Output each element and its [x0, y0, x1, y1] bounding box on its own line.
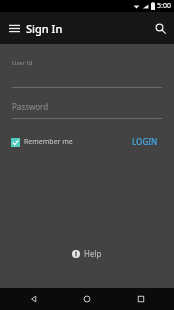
button[interactable]: Recent apps [121, 288, 161, 310]
staticText: User Id [12, 59, 33, 67]
staticText: LOGIN [132, 136, 158, 147]
other: Remember me checkbox, checked [11, 138, 20, 147]
staticText: Remember me [24, 137, 73, 147]
button[interactable]: Remember me checkbox, checked [10, 133, 74, 151]
staticText: 5:00 [157, 1, 171, 11]
button[interactable]: Search [150, 18, 170, 38]
button[interactable]: Password [12, 101, 162, 119]
staticText: Sign In [26, 21, 63, 36]
staticText: Help [84, 248, 102, 259]
button[interactable]: Help [62, 243, 112, 264]
button[interactable]: Home [67, 288, 107, 310]
button[interactable]: Back [14, 288, 54, 310]
button[interactable]: LOGIN [126, 131, 164, 152]
button[interactable]: Open navigation menu [4, 18, 24, 38]
button[interactable]: User Id [12, 59, 162, 88]
staticText: Password [12, 101, 49, 112]
